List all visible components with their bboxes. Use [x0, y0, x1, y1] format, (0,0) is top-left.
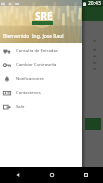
button[interactable]: Recents	[69, 167, 103, 183]
staticText: Cambiar Contraseña	[16, 62, 57, 68]
button[interactable]: Salir	[0, 100, 82, 114]
button[interactable]: Notificaciones	[0, 72, 82, 86]
staticText: Salir	[16, 104, 25, 110]
button[interactable]: Contactenos	[0, 86, 82, 100]
button[interactable]: Consulta de Entradas	[0, 44, 82, 58]
button[interactable]: Back	[0, 167, 35, 183]
staticText: Notificaciones	[16, 76, 44, 82]
staticText: 20:43	[88, 0, 101, 7]
staticText: SRE	[35, 9, 53, 23]
button[interactable]: Home	[35, 167, 69, 183]
staticText: Consulta de Entradas	[16, 48, 58, 54]
button[interactable]: Cambiar Contraseña	[0, 58, 82, 72]
staticText: Bienvenido Ing. Jose Raul	[3, 33, 64, 40]
staticText: Contactenos	[16, 90, 41, 96]
